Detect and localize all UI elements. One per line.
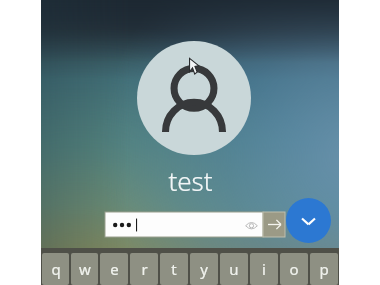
staticText: test bbox=[168, 163, 213, 195]
staticText: q bbox=[51, 259, 61, 279]
staticText: y bbox=[200, 259, 208, 279]
staticText: p bbox=[319, 259, 329, 279]
button[interactable]: r bbox=[130, 253, 158, 285]
staticText: w bbox=[79, 259, 91, 279]
staticText: e bbox=[110, 259, 119, 279]
button[interactable]: p bbox=[310, 253, 338, 285]
button[interactable]: o bbox=[280, 253, 308, 285]
staticText: u bbox=[229, 259, 239, 279]
staticText: o bbox=[289, 259, 299, 279]
button[interactable]: w bbox=[71, 253, 98, 285]
button[interactable]: Submit password bbox=[263, 212, 285, 237]
staticText: t bbox=[171, 259, 177, 279]
button[interactable]: q bbox=[42, 253, 69, 285]
button[interactable]: Show more options bbox=[286, 198, 331, 243]
button[interactable]: u bbox=[220, 253, 248, 285]
button[interactable]: y bbox=[190, 253, 218, 285]
button[interactable]: t bbox=[160, 253, 188, 285]
staticText: r bbox=[141, 259, 148, 279]
button[interactable]: e bbox=[100, 253, 128, 285]
staticText: i bbox=[262, 259, 266, 279]
button[interactable]: i bbox=[250, 253, 278, 285]
button[interactable]: Reveal password bbox=[242, 216, 260, 234]
button[interactable]: Reveal password bbox=[105, 212, 263, 237]
button[interactable]: User avatar test bbox=[137, 41, 251, 155]
